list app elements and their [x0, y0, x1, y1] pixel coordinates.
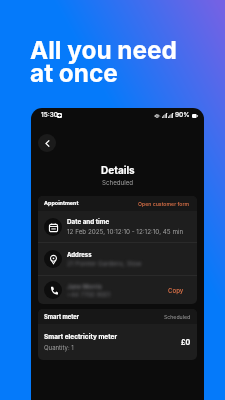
- staticText: Jane Morris: [67, 283, 102, 290]
- staticText: +44 7700 9001: [67, 291, 111, 298]
- button[interactable]: Back: [38, 134, 56, 152]
- staticText: 90%: [175, 111, 190, 119]
- staticText: Address: [67, 251, 92, 258]
- staticText: Copy: [168, 287, 184, 294]
- staticText: Appointment: [44, 200, 79, 207]
- staticText: 21 Pointer Gardens, Stow: [67, 260, 142, 268]
- staticText: 15:30: [41, 111, 58, 119]
- staticText: Quantity: 1: [44, 344, 74, 351]
- staticText: Smart meter: [44, 313, 80, 320]
- staticText: 12 Feb 2025, 10:12:10 - 12:12:10, 45 min: [67, 228, 184, 236]
- button[interactable]: Open customer form: [137, 200, 191, 208]
- staticText: Details: [101, 164, 135, 176]
- button[interactable]: Date and time: [38, 211, 197, 242]
- button[interactable]: Copy: [168, 287, 191, 294]
- button[interactable]: Jane Morris: [38, 276, 197, 304]
- staticText: Open customer form: [138, 201, 190, 207]
- staticText: Smart electricity meter: [44, 333, 118, 341]
- staticText: Scheduled: [164, 314, 191, 320]
- staticText: All you need at once: [30, 35, 177, 88]
- button[interactable]: Address: [38, 243, 197, 275]
- staticText: Date and time: [67, 218, 110, 226]
- staticText: Scheduled: [102, 179, 134, 187]
- staticText: £0: [181, 338, 191, 346]
